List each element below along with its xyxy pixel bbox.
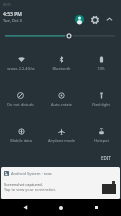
- button[interactable]: Brightness: [0, 29, 121, 42]
- button[interactable]: Airplane mode: [41, 114, 81, 150]
- staticText: Do not disturb: [7, 102, 34, 107]
- staticText: Screenshot captured.: [4, 182, 43, 187]
- button[interactable]: Mobile data: [0, 114, 41, 150]
- staticText: Hotspot: [94, 138, 109, 143]
- staticText: 4:53 PM: [3, 11, 22, 18]
- staticText: Mobile data: [10, 138, 32, 143]
- button[interactable]: Bluetooth: [41, 42, 81, 78]
- staticText: Auto-rotate: [51, 102, 72, 107]
- button[interactable]: Recent apps: [86, 199, 106, 216]
- button[interactable]: Auto-rotate: [41, 78, 81, 114]
- staticText: Bluetooth: [52, 66, 71, 71]
- button[interactable]: Flashlight: [81, 78, 121, 114]
- button[interactable]: 74%: [81, 42, 121, 78]
- staticText: Android System · now: [11, 171, 52, 176]
- button[interactable]: Collapse panel: [102, 12, 117, 27]
- button[interactable]: Home: [51, 199, 71, 216]
- staticText: Tap to view your screenshot.: [4, 187, 56, 192]
- staticText: Airplane mode: [48, 138, 75, 143]
- staticText: WiFi: [3, 2, 11, 7]
- staticText: wswx-2.2-4Ghz: [7, 66, 35, 71]
- button[interactable]: EDIT: [99, 153, 113, 163]
- button[interactable]: wswx-2.2-4Ghz: [0, 42, 41, 78]
- button[interactable]: Do not disturb: [0, 78, 41, 114]
- staticText: 74%: [97, 66, 105, 71]
- button[interactable]: Settings: [87, 12, 102, 27]
- button[interactable]: Android System · now: [1, 167, 120, 199]
- button[interactable]: Back: [15, 199, 35, 216]
- staticText: EDIT: [101, 155, 111, 161]
- staticText: Tue, Oct 3: [3, 18, 22, 23]
- button[interactable]: User account: [72, 12, 87, 27]
- button[interactable]: Hotspot: [81, 114, 121, 150]
- staticText: Flashlight: [92, 102, 110, 107]
